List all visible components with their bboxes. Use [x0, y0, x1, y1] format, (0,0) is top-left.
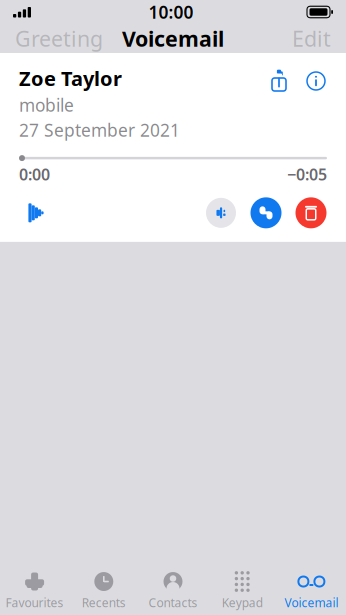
staticText: Recents: [82, 594, 126, 610]
button[interactable]: More info: [305, 68, 327, 94]
staticText: Contacts: [148, 594, 197, 610]
staticText: Greeting: [15, 24, 103, 53]
staticText: −0:05: [287, 164, 327, 185]
button[interactable]: Voicemail: [277, 566, 346, 615]
button[interactable]: Contacts: [138, 566, 208, 615]
staticText: Zoe Taylor: [19, 65, 122, 92]
button[interactable]: Recents: [69, 566, 138, 615]
staticText: 10:00: [148, 0, 193, 23]
staticText: 0:00: [19, 164, 50, 185]
staticText: Edit: [292, 24, 331, 53]
button[interactable]: Keypad: [208, 566, 277, 615]
button[interactable]: Greeting: [0, 24, 118, 52]
staticText: Voicemail: [122, 24, 224, 53]
staticText: Voicemail: [284, 594, 338, 610]
button[interactable]: Favourites: [0, 566, 69, 615]
button[interactable]: Edit: [277, 24, 346, 52]
button[interactable]: Play: [19, 198, 53, 228]
staticText: mobile: [19, 94, 74, 117]
staticText: Favourites: [6, 594, 64, 610]
staticText: 27 September 2021: [19, 119, 180, 142]
button[interactable]: Speaker: [205, 197, 237, 229]
staticText: Keypad: [222, 594, 263, 610]
button[interactable]: Share: [268, 68, 290, 94]
button[interactable]: Delete: [295, 197, 327, 229]
button[interactable]: Call back: [250, 197, 282, 229]
